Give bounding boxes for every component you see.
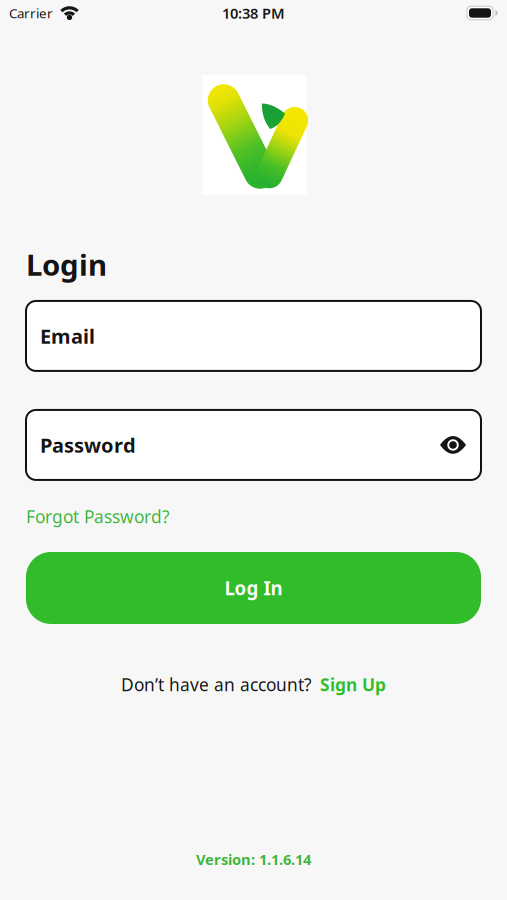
button[interactable]: Password: [26, 410, 481, 480]
button[interactable]: Forgot Password?: [26, 505, 170, 528]
button[interactable]: Sign Up: [320, 673, 386, 696]
button[interactable]: Log In: [26, 552, 481, 624]
staticText: Sign Up: [320, 673, 386, 696]
staticText: Forgot Password?: [26, 505, 170, 528]
staticText: Password: [40, 432, 136, 458]
staticText: Login: [26, 245, 107, 284]
button[interactable]: Email: [26, 301, 481, 371]
staticText: Version: 1.1.6.14: [196, 849, 311, 869]
staticText: Don’t have an account?: [121, 673, 312, 696]
staticText: 10:38 PM: [222, 3, 285, 23]
staticText: Carrier: [9, 4, 53, 22]
staticText: Email: [40, 323, 95, 349]
button[interactable]: Show password: [440, 436, 466, 454]
staticText: Log In: [224, 576, 282, 600]
